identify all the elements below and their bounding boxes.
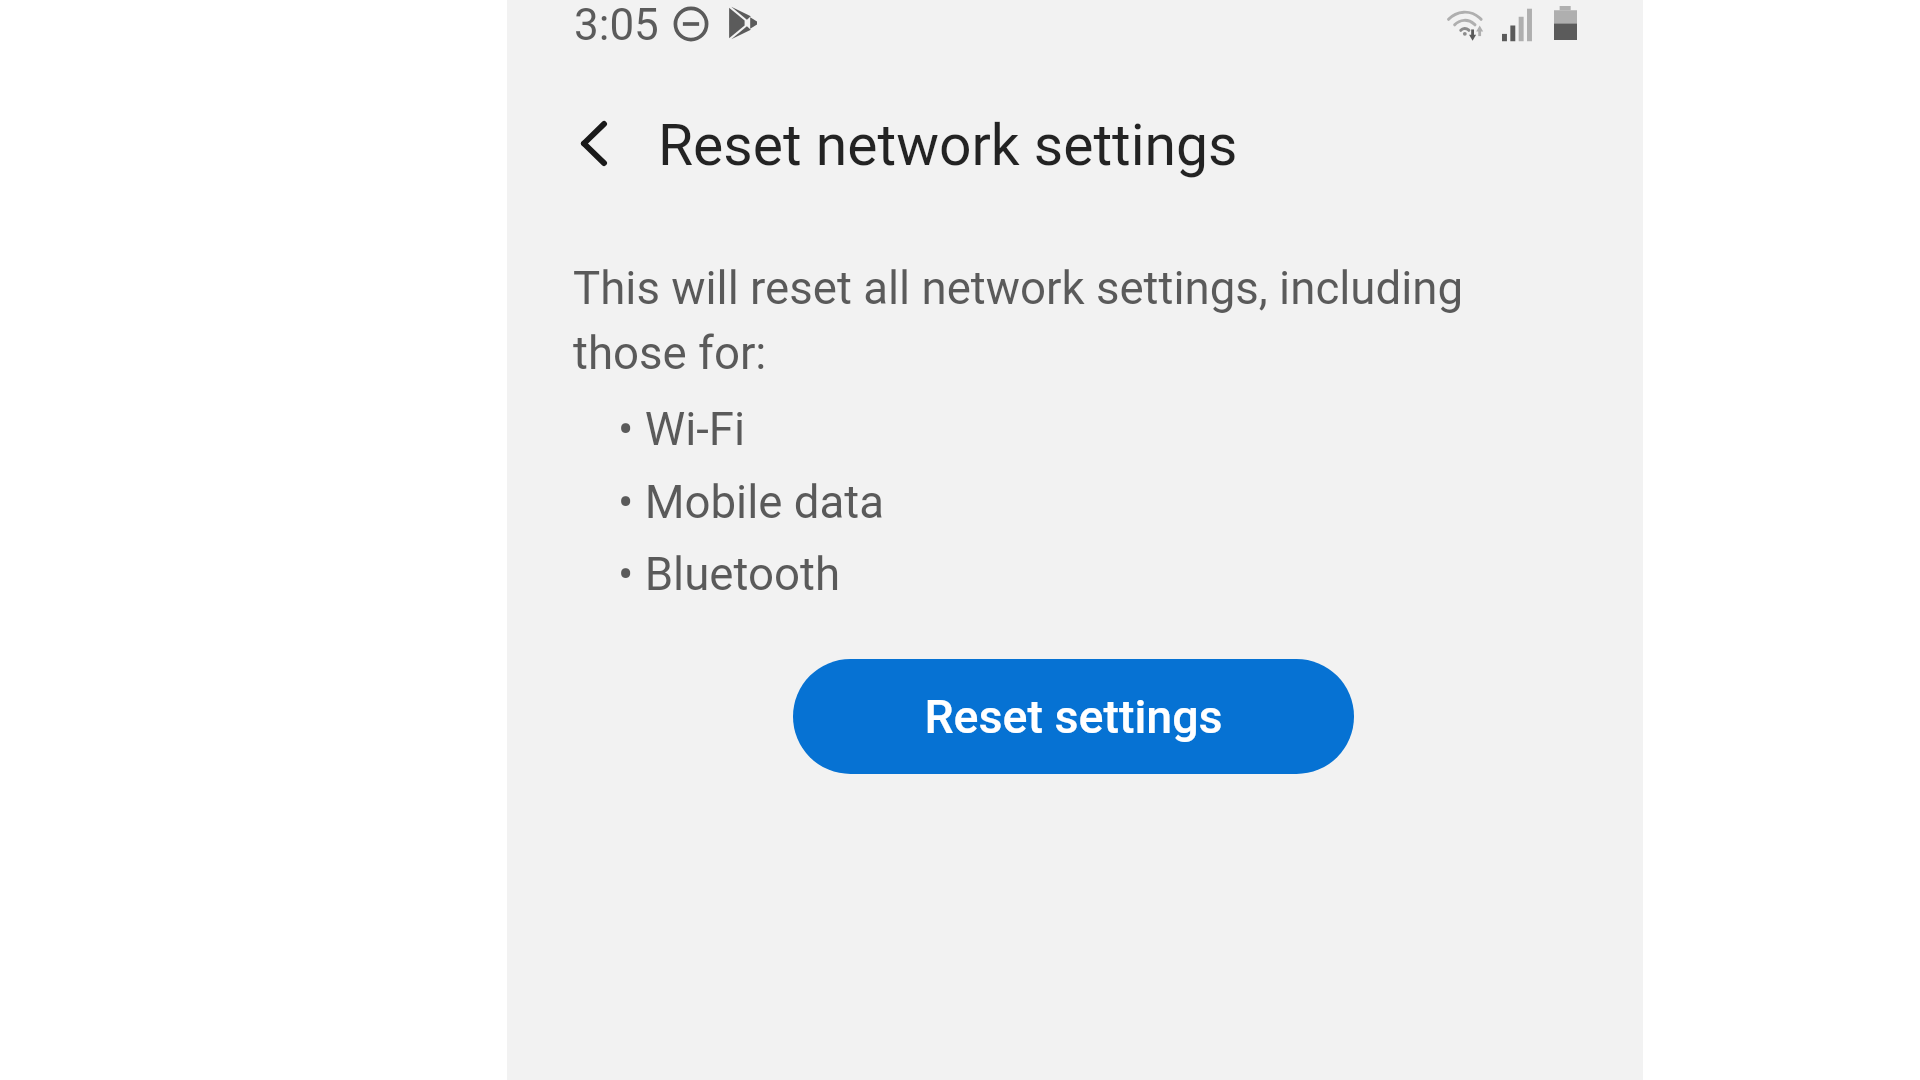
- staticText: • Wi-Fi: [618, 403, 746, 456]
- staticText: Reset network settings: [658, 112, 1238, 179]
- staticText: • Mobile data: [618, 476, 884, 529]
- staticText: This will reset all network settings, in…: [573, 262, 1464, 381]
- button[interactable]: Back: [551, 100, 637, 186]
- staticText: • Bluetooth: [618, 548, 841, 601]
- staticText: Reset settings: [924, 690, 1223, 744]
- staticText: 3:05: [574, 0, 659, 51]
- button[interactable]: Reset settings: [793, 659, 1354, 774]
